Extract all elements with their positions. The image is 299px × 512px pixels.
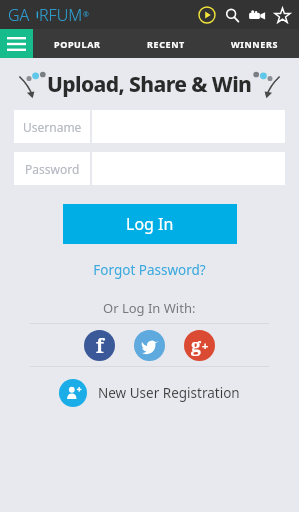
button[interactable]: Menu xyxy=(0,29,33,58)
staticText: Password xyxy=(25,161,80,177)
button[interactable]: Favorites xyxy=(272,5,292,25)
button[interactable]: New User Registration xyxy=(59,379,240,407)
staticText: WINNERS xyxy=(231,38,278,50)
button[interactable]: Search xyxy=(222,5,242,25)
staticText: Upload, Share & Win xyxy=(47,70,252,99)
staticText: RECENT xyxy=(147,38,185,50)
button[interactable]: POPULAR xyxy=(33,29,121,58)
button[interactable]: Video xyxy=(247,5,267,25)
button[interactable]: Play xyxy=(197,5,217,25)
staticText: ® xyxy=(83,10,89,20)
staticText: Log In xyxy=(126,213,174,235)
button[interactable]: Password xyxy=(14,152,285,185)
button[interactable]: Forgot Password? xyxy=(93,261,206,279)
staticText: POPULAR xyxy=(54,38,101,50)
button[interactable]: Log in with Twitter xyxy=(134,330,165,361)
staticText: f xyxy=(96,333,104,359)
staticText: Username xyxy=(23,119,82,135)
staticText: New User Registration xyxy=(98,384,240,402)
staticText: g xyxy=(191,333,202,358)
staticText: + xyxy=(202,338,209,353)
staticText: RFUM xyxy=(39,4,83,26)
button[interactable]: RECENT xyxy=(121,29,210,58)
staticText: Or Log In With: xyxy=(103,299,196,317)
button[interactable]: WINNERS xyxy=(210,29,299,58)
button[interactable]: Log in with Google Plus xyxy=(184,330,215,361)
button[interactable]: Log In xyxy=(63,204,237,244)
button[interactable]: Username xyxy=(14,110,285,143)
staticText: GA xyxy=(8,4,30,26)
button[interactable]: Log in with Facebook xyxy=(84,330,115,361)
